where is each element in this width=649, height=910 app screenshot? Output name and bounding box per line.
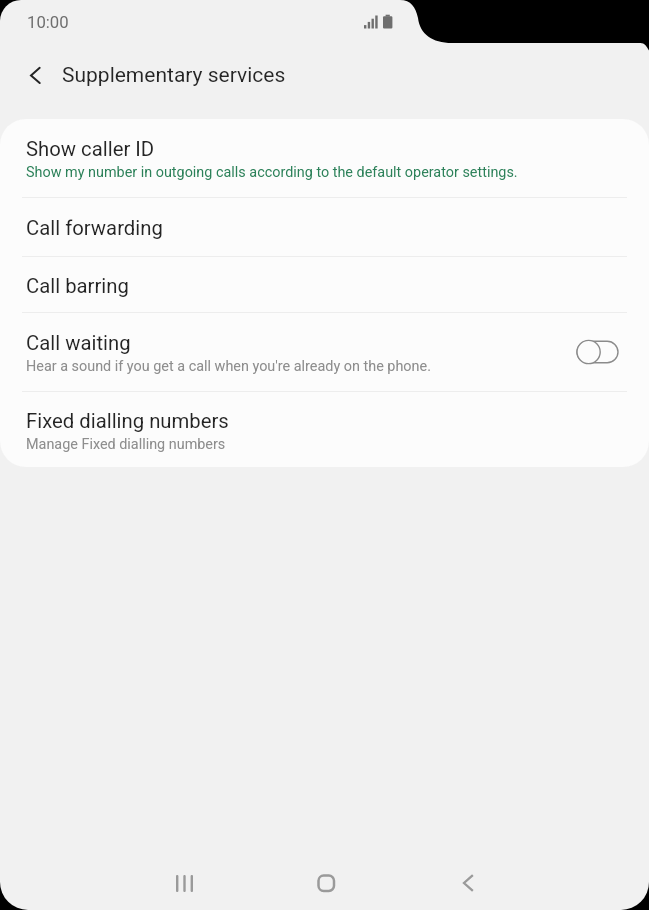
staticText: Call forwarding xyxy=(26,216,163,240)
button[interactable]: Call waiting switch, off xyxy=(576,337,620,367)
staticText: Show caller ID xyxy=(26,137,155,161)
button[interactable]: Show caller ID xyxy=(0,119,649,197)
button[interactable]: Call forwarding xyxy=(0,198,649,256)
button[interactable]: Home xyxy=(294,856,358,910)
button[interactable]: Call barring xyxy=(0,257,649,312)
staticText: Fixed dialling numbers xyxy=(26,409,229,433)
button[interactable]: Recent apps xyxy=(152,856,216,910)
button[interactable]: Back xyxy=(436,856,500,910)
staticText: Hear a sound if you get a call when you'… xyxy=(26,358,431,375)
staticText: Call barring xyxy=(26,274,129,298)
button[interactable]: Fixed dialling numbers xyxy=(0,392,649,467)
button[interactable]: Navigate up xyxy=(0,47,70,104)
staticText: Call waiting xyxy=(26,331,131,355)
staticText: Manage Fixed dialling numbers xyxy=(26,436,226,453)
staticText: Show my number in outgoing calls accordi… xyxy=(26,164,518,181)
staticText: 10:00 xyxy=(27,13,69,33)
staticText: Supplementary services xyxy=(62,63,286,88)
button[interactable]: Call waiting xyxy=(0,313,649,391)
